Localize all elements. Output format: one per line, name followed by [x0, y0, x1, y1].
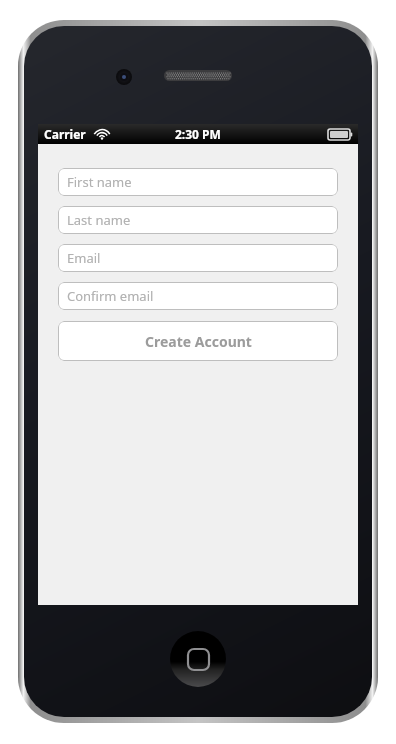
button[interactable]: Last name: [58, 206, 338, 234]
button[interactable]: Confirm email: [58, 282, 338, 310]
staticText: Confirm email: [67, 287, 154, 305]
staticText: Last name: [67, 211, 131, 229]
staticText: Email: [67, 249, 101, 267]
button[interactable]: Home: [170, 631, 226, 687]
staticText: 2:30 PM: [175, 126, 221, 142]
staticText: First name: [67, 173, 132, 191]
staticText: Carrier: [44, 126, 86, 142]
button[interactable]: Create Account: [58, 321, 338, 361]
staticText: Create Account: [145, 332, 252, 351]
button[interactable]: First name: [58, 168, 338, 196]
button[interactable]: Email: [58, 244, 338, 272]
